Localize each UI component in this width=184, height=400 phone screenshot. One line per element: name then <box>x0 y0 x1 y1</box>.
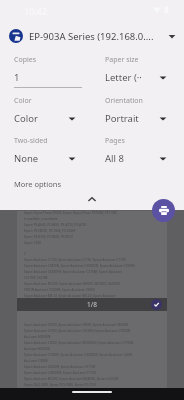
staticText: Epson AcuLaser C1900D, Epson AcuLaser C4… <box>24 353 133 357</box>
staticText: AcuLaser M2300D <box>24 347 51 351</box>
staticText: Epson PX-FA700, PX-1004, PX-1600F <box>24 229 76 233</box>
staticText: AcuLaser C900N <box>24 359 48 363</box>
button[interactable]: All 8 <box>105 152 167 165</box>
staticText: 1/8 <box>87 300 97 309</box>
staticText: Epson AcuLaser C2800N, Epson AcuLaser C3… <box>24 264 135 268</box>
staticText: Two-sided <box>14 136 48 146</box>
button[interactable]: Collapse <box>84 192 100 208</box>
staticText: is available, is available <box>24 217 58 221</box>
staticText: Epson AcuLaser MX-14, Epson AcuLaser MX-… <box>24 294 116 298</box>
staticText: Epson PX-A640, PX-A650, PX-A720, PX-A740 <box>24 223 87 227</box>
staticText: Pages <box>105 136 125 146</box>
staticText: Epson AcuLaser C1100, Epson AcuLaser C17… <box>24 258 126 262</box>
staticText: Portrait <box>105 112 159 125</box>
staticText: AcuLaser M4000N <box>24 335 51 339</box>
button[interactable]: Print <box>152 199 175 222</box>
staticText: Epson PX-B300, PX-B500, PX-B510 <box>24 235 73 239</box>
staticText: Epson AcuLaser CX29DNF, Epson AcuLaser C… <box>24 270 123 274</box>
staticText: Epson DLQ-3500, Epson DFX-9000, Epson FX… <box>24 383 96 387</box>
staticText: 1 <box>14 71 20 84</box>
staticText: Color <box>14 112 68 125</box>
button[interactable]: Portrait <box>105 112 167 125</box>
staticText: All 8 <box>105 152 159 165</box>
staticText: Epson AcuLaser M1200, Epson AcuLaser M24… <box>24 377 119 381</box>
staticText: Epson AcuLaser C8100, Epson AcuLaser C85… <box>24 323 128 327</box>
staticText: Letter (·· <box>105 71 159 84</box>
staticText: Epson 1400 <box>24 241 41 245</box>
staticText: EP-903A Series (192.168.0.... <box>29 30 164 43</box>
staticText: 2 <box>24 252 26 256</box>
staticText: CX17NF, CX21NF <box>24 276 48 280</box>
button[interactable]: None <box>14 152 76 165</box>
staticText: Epson AcuLaser M1200, Epson AcuLaser M20… <box>24 282 121 286</box>
staticText: Paper size <box>105 55 139 65</box>
staticText: Copies <box>14 55 37 65</box>
staticText: EPSON AcuLaser C9300N, Epson AcuLaser C3… <box>24 288 95 292</box>
button[interactable]: Page selected <box>151 299 162 310</box>
staticText: Orientation <box>105 96 143 106</box>
button[interactable]: Letter (·· <box>105 71 167 84</box>
staticText: None <box>14 152 68 165</box>
button[interactable]: Color <box>14 112 76 125</box>
staticText: Epson AcuLaser C2600N, Epson AcuLaser CX… <box>24 365 96 369</box>
staticText: Epson WF-7521, Epson WF-3521, Epson WF-3… <box>24 389 95 393</box>
staticText: Epson Stylus Photo PX660, Epson Stylus P… <box>24 211 117 215</box>
staticText: Epson AcuLaser C2000, Epson AcuLaser M20… <box>24 341 134 345</box>
staticText: Color <box>14 96 32 106</box>
staticText: Epson AcuLaser C3800DN, Epson AcuLaser C… <box>24 371 96 375</box>
button[interactable]: EP-903A Series (192.168.0.... <box>0 26 184 46</box>
staticText: Epson AcuLaser C9100, Epson AcuLaser C92… <box>24 329 131 333</box>
button[interactable]: More options <box>14 179 62 189</box>
